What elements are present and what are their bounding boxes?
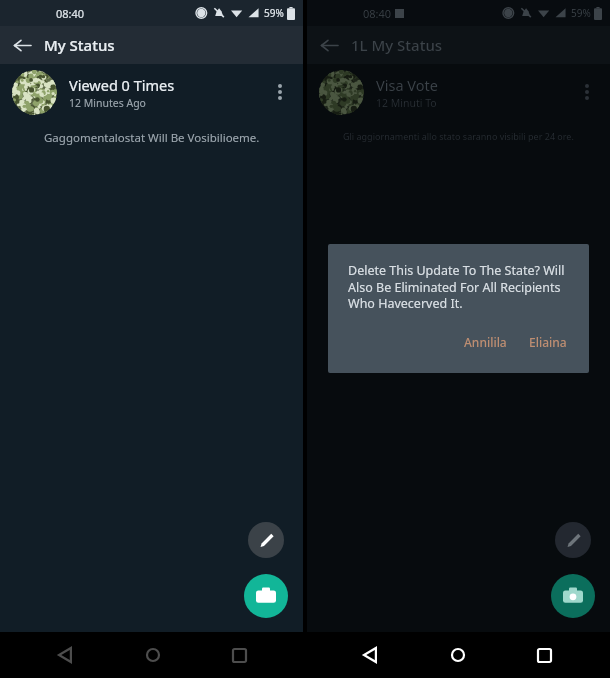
staticText: 12 Minutes Ago <box>69 96 146 110</box>
button[interactable]: Viewed 0 Times <box>0 64 303 120</box>
staticText: Delete This Update To The State? Will Al… <box>348 262 575 311</box>
button[interactable]: More options <box>261 73 299 111</box>
staticText: 08:40 <box>56 6 85 21</box>
staticText: Annilila <box>464 334 507 350</box>
staticText: 59% <box>571 6 591 20</box>
button[interactable]: Recent apps <box>523 634 565 676</box>
button[interactable]: Back <box>0 26 44 64</box>
button[interactable]: Camera <box>244 574 288 618</box>
staticText: Gli aggiornamenti allo stato saranno vis… <box>343 130 574 142</box>
button[interactable]: Recent apps <box>218 634 260 676</box>
staticText: Viewed 0 Times <box>69 75 175 95</box>
button[interactable]: Home <box>437 634 479 676</box>
button[interactable]: Visa Vote <box>307 64 610 120</box>
button[interactable]: Back <box>350 634 392 676</box>
staticText: Eliaina <box>529 334 567 350</box>
staticText: 08:40 <box>363 6 392 21</box>
button[interactable]: Camera <box>551 574 595 618</box>
staticText: 12 Minuti To <box>376 96 437 110</box>
staticText: 1L My Status <box>351 35 443 55</box>
button[interactable]: More options <box>568 73 606 111</box>
staticText: Visa Vote <box>376 75 438 95</box>
button[interactable]: Back <box>45 634 87 676</box>
button[interactable]: Write status <box>555 522 591 558</box>
button[interactable]: Annilila <box>456 329 515 355</box>
button[interactable]: Back <box>307 26 351 64</box>
staticText: Gaggomentalostat Will Be Vosibilioeme. <box>44 130 260 146</box>
staticText: 59% <box>264 6 284 20</box>
button[interactable]: Write status <box>248 522 284 558</box>
button[interactable]: Home <box>132 634 174 676</box>
staticText: My Status <box>44 35 115 55</box>
button[interactable]: Eliaina <box>521 329 575 355</box>
